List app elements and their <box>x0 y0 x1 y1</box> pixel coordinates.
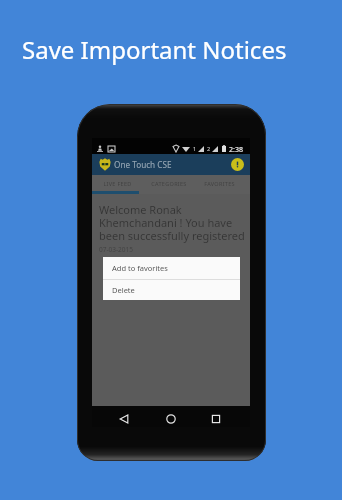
button[interactable]: Delete <box>103 280 240 300</box>
button[interactable]: Recent apps <box>206 409 225 428</box>
staticText: Add to favorites <box>112 263 168 273</box>
staticText: LIVE FEED <box>103 180 132 187</box>
button[interactable]: Back <box>114 409 133 428</box>
button[interactable]: FAVORITES <box>194 175 245 191</box>
staticText: 07-03-2015 <box>99 245 133 254</box>
button[interactable]: App logo <box>98 158 111 171</box>
staticText: FAVORITES <box>204 180 235 187</box>
staticText: Delete <box>112 285 135 295</box>
button[interactable]: Notifications <box>231 158 244 171</box>
staticText: CATEGORIES <box>151 180 187 187</box>
staticText: Welcome Ronak Khemchandani ! You have be… <box>99 202 245 244</box>
staticText: One Touch CSE <box>114 159 172 170</box>
staticText: 1 <box>193 145 197 152</box>
button[interactable]: CATEGORIES <box>143 175 194 191</box>
staticText: 2:38 <box>229 145 243 152</box>
button[interactable]: Add to favorites <box>103 257 240 279</box>
button[interactable]: LIVE FEED <box>92 175 143 191</box>
staticText: Save Important Notices <box>22 33 287 66</box>
button[interactable]: Home <box>161 409 180 428</box>
staticText: 2 <box>207 145 211 152</box>
